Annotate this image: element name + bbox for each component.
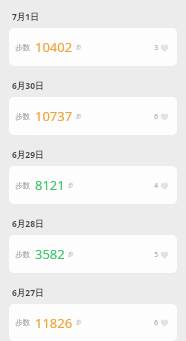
staticText: 6月30日 xyxy=(12,80,44,92)
staticText: 6 xyxy=(154,112,158,121)
staticText: 步数 xyxy=(15,181,30,190)
staticText: 7月1日 xyxy=(12,11,39,23)
button[interactable]: 步数 xyxy=(9,235,177,273)
staticText: 6月27日 xyxy=(12,287,44,299)
button[interactable]: Likes xyxy=(152,316,171,329)
staticText: 4 xyxy=(154,181,158,190)
staticText: 10402 xyxy=(35,38,73,56)
staticText: 步数 xyxy=(15,250,30,259)
button[interactable]: 步数 xyxy=(9,304,177,341)
staticText: 11826 xyxy=(35,314,73,332)
button[interactable]: Likes xyxy=(152,110,171,123)
staticText: 步 xyxy=(76,44,82,51)
staticText: 6月28日 xyxy=(12,218,44,230)
staticText: 步 xyxy=(68,182,74,189)
staticText: 3582 xyxy=(35,245,65,263)
staticText: 6 xyxy=(154,318,158,327)
button[interactable]: 步数 xyxy=(9,97,177,135)
button[interactable]: Likes xyxy=(152,41,171,54)
button[interactable]: 步数 xyxy=(9,28,177,66)
staticText: 5 xyxy=(154,250,158,259)
staticText: 步数 xyxy=(15,43,30,52)
staticText: 8121 xyxy=(35,176,65,194)
button[interactable]: 步数 xyxy=(9,166,177,204)
staticText: 步数 xyxy=(15,318,30,327)
button[interactable]: Likes xyxy=(152,179,171,192)
button[interactable]: Likes xyxy=(152,248,171,261)
staticText: 步 xyxy=(68,251,74,258)
staticText: 6月29日 xyxy=(12,149,44,161)
staticText: 步数 xyxy=(15,112,30,121)
staticText: 3 xyxy=(154,43,158,52)
staticText: 10737 xyxy=(35,107,73,125)
staticText: 步 xyxy=(76,113,82,120)
staticText: 步 xyxy=(76,319,82,326)
